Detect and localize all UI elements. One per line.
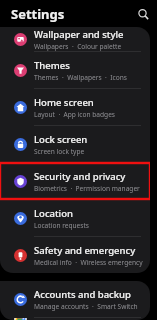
staticText: Location [34,207,73,220]
button[interactable]: Lock screen [0,126,150,162]
staticText: Security and privacy [34,170,126,183]
staticText: Settings [11,5,65,23]
staticText: Themes · Wallpapers · Icons [34,73,127,82]
button[interactable]: Themes [0,52,150,88]
staticText: Lock screen [34,133,88,146]
staticText: Biometrics · Permission manager [34,184,140,193]
staticText: Medical info · Wireless emergency alerts [34,258,143,267]
button[interactable]: Home screen [0,89,150,125]
staticText: Wallpapers · Colour palette [34,42,122,51]
button[interactable]: Location [0,200,150,236]
staticText: Layout · App icon badges [34,110,116,119]
button[interactable]: Accounts and backup [0,281,150,317]
staticText: Themes [34,59,70,72]
staticText: Wallpaper and style [34,28,124,41]
button[interactable]: Search [134,5,152,23]
staticText: Accounts and backup [34,288,131,301]
staticText: Manage accounts · Smart Switch [34,302,138,311]
button[interactable]: Wallpaper and style [0,27,150,51]
staticText: Location requests [34,221,90,230]
staticText: Home screen [34,96,94,109]
button[interactable]: Security and privacy [0,163,150,199]
button[interactable]: Safety and emergency [0,237,150,273]
staticText: Screen lock type [34,147,85,156]
button[interactable]: Google [0,318,150,320]
staticText: Safety and emergency [34,244,136,257]
